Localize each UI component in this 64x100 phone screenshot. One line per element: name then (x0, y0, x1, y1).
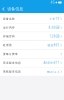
staticText: 设备名称 (3, 17, 15, 20)
button[interactable]: 运行内存 (0, 23, 64, 32)
staticText: 安卓版本信息 (3, 61, 21, 64)
staticText: 骁龙865 (48, 43, 60, 47)
staticText: 128GB (50, 35, 60, 38)
staticText: 处理器 (3, 44, 12, 47)
staticText: 4G (51, 1, 55, 4)
staticText: 小米10 (50, 17, 60, 21)
staticText: 存储空间 (3, 35, 15, 38)
button[interactable]: 系统版本信息 (0, 67, 64, 76)
button[interactable]: 处理器 (0, 41, 64, 49)
staticText: Android11 (44, 61, 60, 65)
staticText: 屏幕分辨率 (3, 52, 18, 56)
staticText: 运行内存 (3, 26, 15, 29)
staticText: 设备信息 (7, 6, 23, 11)
staticText: 8.00GB (49, 26, 60, 29)
staticText: 系统版本信息 (3, 70, 21, 73)
button[interactable]: 安卓版本信息 (0, 59, 64, 67)
button[interactable]: 存储空间 (0, 32, 64, 41)
button[interactable]: Back (0, 5, 7, 13)
button[interactable]: 屏幕分辨率 (0, 50, 64, 58)
button[interactable]: 设备名称 (0, 15, 64, 23)
staticText: MIUI12.5 (47, 70, 60, 73)
